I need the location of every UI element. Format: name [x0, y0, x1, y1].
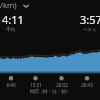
staticText: 6:40 — [1, 82, 21, 88]
button[interactable]: /km) — [0, 0, 29, 11]
staticText: 時間（時：分：秒） — [0, 89, 100, 95]
staticText: 平均 — [6, 27, 15, 33]
staticText: 20:02 — [52, 82, 72, 88]
staticText: 13:21 — [26, 82, 46, 88]
staticText: 26:43 — [77, 82, 97, 88]
other: Change metric — [23, 3, 29, 9]
staticText: ベスト — [83, 27, 97, 33]
staticText: 3:57 — [80, 12, 100, 27]
staticText: 4:11 — [2, 12, 24, 27]
staticText: /km) — [0, 0, 17, 11]
